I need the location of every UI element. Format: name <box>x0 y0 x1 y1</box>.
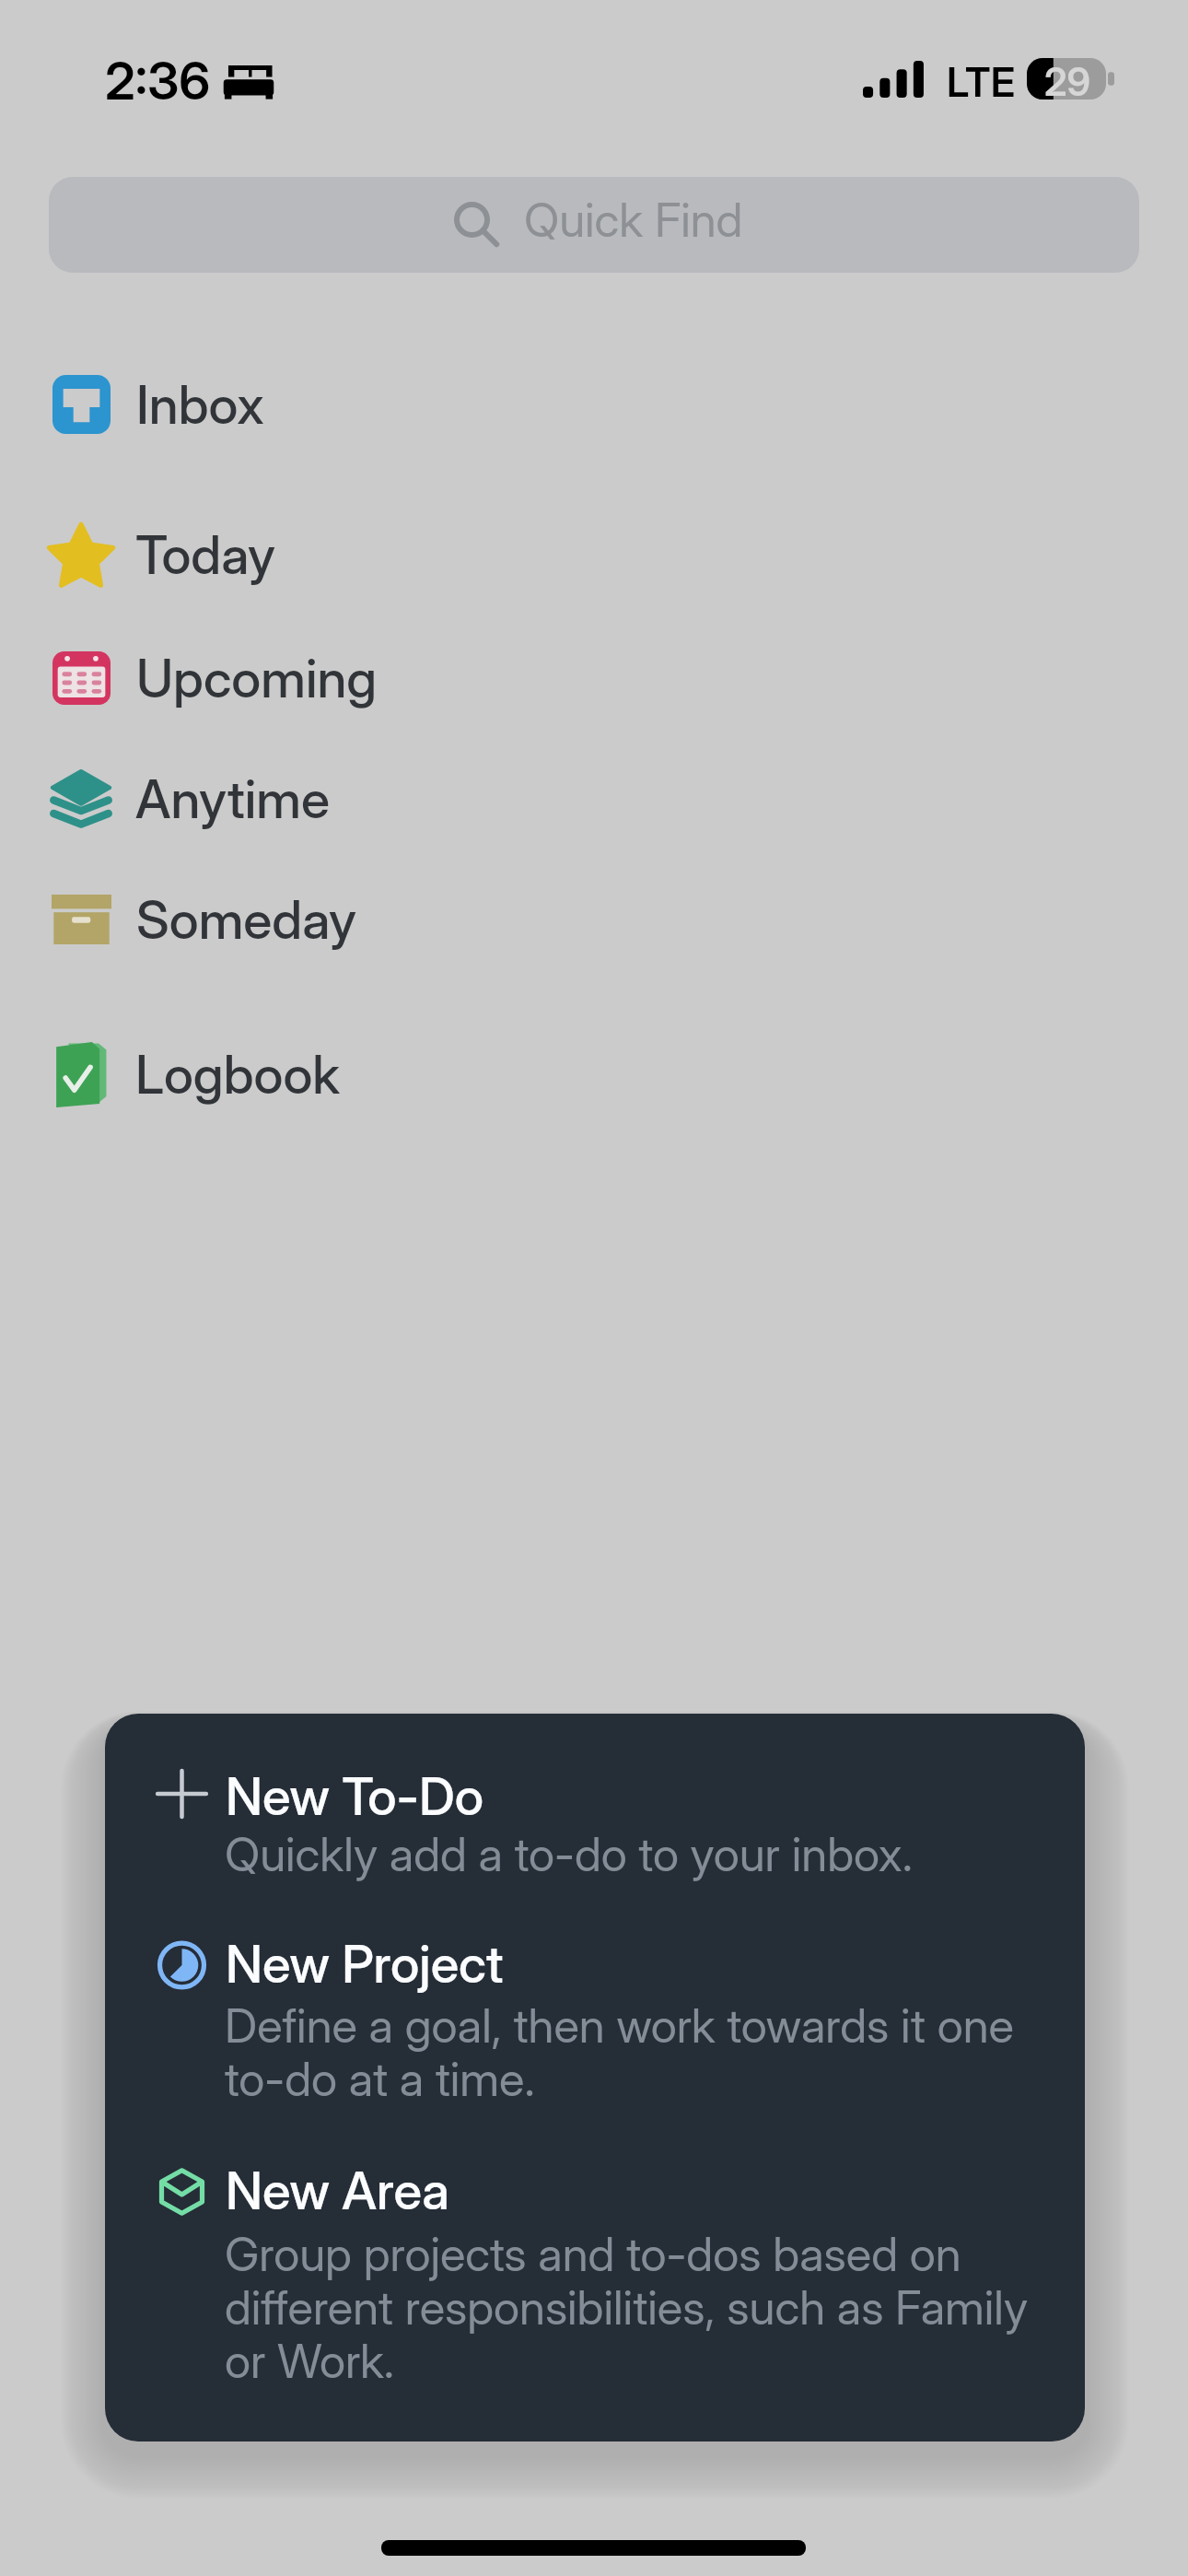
button[interactable]: New Area <box>105 2156 1085 2405</box>
staticText: Logbook <box>135 1043 341 1107</box>
staticText: Quickly add a to-do to your inbox. <box>225 1826 1054 1883</box>
button[interactable]: New To-Do <box>105 1759 1085 1900</box>
button[interactable]: Logbook <box>0 1017 1188 1131</box>
staticText: Today <box>135 523 276 587</box>
staticText: Someday <box>136 888 356 952</box>
staticText: Quick Find <box>524 192 743 249</box>
button[interactable]: Quick Find <box>49 177 1139 273</box>
button[interactable]: Upcoming <box>0 621 1188 735</box>
staticText: Upcoming <box>136 647 378 710</box>
staticText: Anytime <box>135 767 330 831</box>
button[interactable]: Today <box>0 498 1188 612</box>
button[interactable]: New Project <box>105 1929 1085 2124</box>
staticText: New Area <box>226 2160 450 2222</box>
staticText: LTE <box>947 57 1015 106</box>
staticText: Group projects and to-dos based on diffe… <box>225 2226 1054 2390</box>
staticText: 29 <box>1044 58 1091 105</box>
staticText: New Project <box>226 1933 504 1996</box>
staticText: Define a goal, then work towards it one … <box>225 1997 1054 2108</box>
staticText: Inbox <box>136 373 264 437</box>
button[interactable]: Inbox <box>0 347 1188 462</box>
staticText: New To-Do <box>226 1765 484 1828</box>
button[interactable]: Anytime <box>0 742 1188 856</box>
button[interactable]: Someday <box>0 862 1188 977</box>
staticText: 2:36 <box>105 50 211 112</box>
